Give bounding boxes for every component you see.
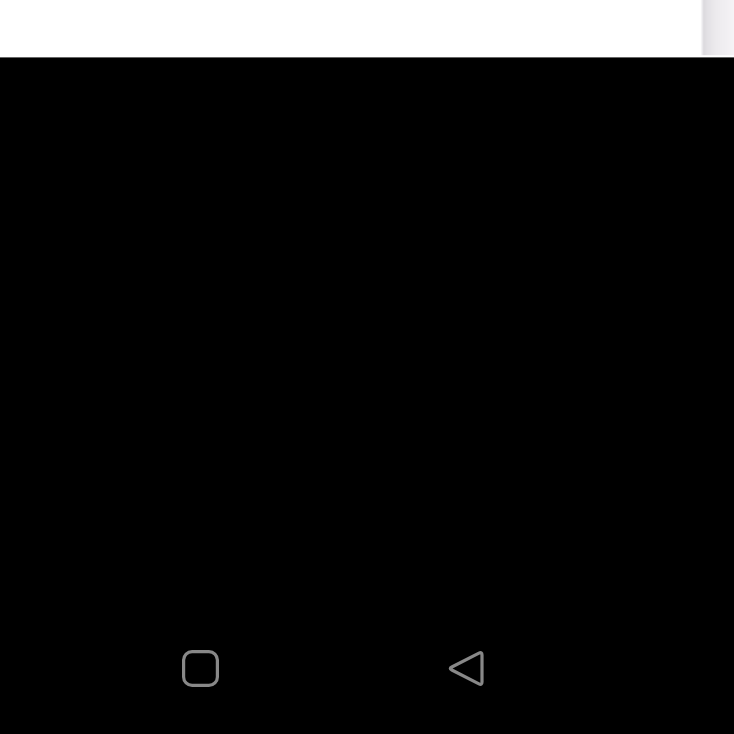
button[interactable]: Back [447,650,484,687]
button[interactable]: Home [182,650,219,687]
